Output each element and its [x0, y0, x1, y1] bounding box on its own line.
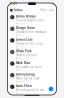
staticText: Shared a photo — [16, 53, 37, 57]
staticText: Sort — [49, 8, 54, 12]
button[interactable]: Design Team — [7, 25, 56, 37]
staticText: Thanks for the help — [16, 42, 43, 45]
staticText: Tuesday — [18, 57, 25, 59]
button[interactable]: Family Group — [7, 72, 56, 83]
staticText: Monday — [18, 69, 24, 71]
staticText: Updated the mockups — [16, 30, 46, 34]
staticText: Olivia Park — [16, 49, 32, 53]
staticText: ▮▮ — [52, 3, 54, 4]
staticText: Saturday — [18, 92, 25, 94]
staticText: Let's catch up soon — [16, 65, 42, 69]
button[interactable]: Emma Wilson — [7, 14, 56, 25]
staticText: Yesterday — [18, 46, 26, 48]
button[interactable]: Compose — [49, 87, 53, 91]
button[interactable]: Filter — [40, 8, 47, 12]
staticText: Sounds good to me — [16, 88, 44, 92]
staticText: Liam Chen — [16, 84, 32, 88]
button[interactable]: James Cole — [7, 37, 56, 48]
staticText: Emma Wilson — [16, 15, 36, 18]
button[interactable]: Sort — [49, 8, 54, 12]
button[interactable]: Liam Chen — [7, 83, 56, 95]
button[interactable]: Menu — [10, 9, 13, 11]
staticText: Family Group — [16, 73, 35, 76]
staticText: Design Team — [16, 26, 35, 30]
button[interactable]: Olivia Park — [7, 48, 56, 60]
staticText: James Cole — [16, 38, 33, 41]
button[interactable]: Mark Diaz — [7, 60, 56, 72]
staticText: Inbox — [14, 8, 22, 12]
staticText: Mom: call me back — [16, 77, 39, 80]
staticText: 9:41 — [10, 2, 17, 5]
staticText: Mark Diaz — [16, 61, 30, 65]
staticText: Filter — [40, 8, 47, 12]
staticText: 8:40 AM — [18, 34, 23, 36]
staticText: Sunday — [18, 81, 24, 82]
staticText: 9:12 AM — [18, 23, 23, 24]
staticText: Project kickoff notes — [16, 19, 44, 22]
